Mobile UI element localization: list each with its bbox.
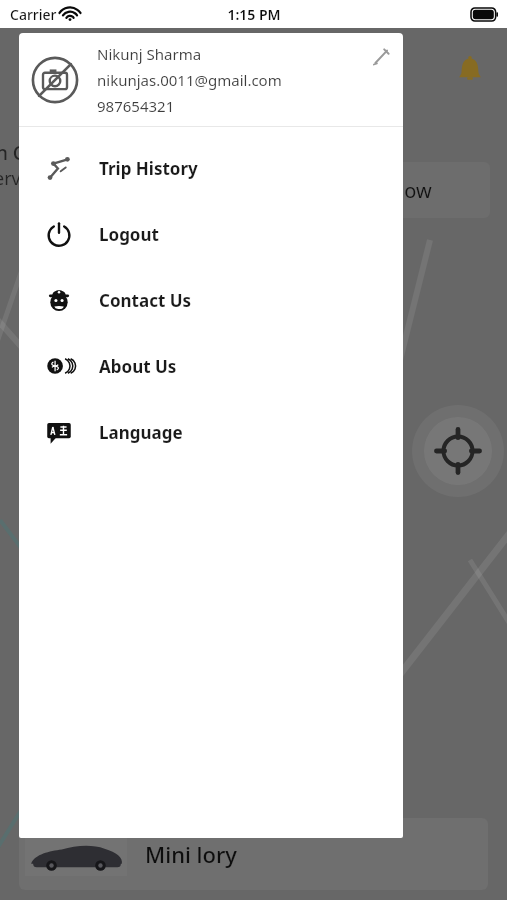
button[interactable]: About Us bbox=[19, 333, 403, 399]
staticText: nikunjas.0011@gmail.com bbox=[97, 70, 282, 90]
staticText: erv bbox=[0, 166, 21, 191]
button[interactable]: My location bbox=[424, 417, 492, 485]
button[interactable]: Mini lory bbox=[19, 818, 488, 890]
staticText: n C bbox=[0, 140, 25, 166]
staticText: 987654321 bbox=[97, 96, 175, 116]
button[interactable]: Logout bbox=[19, 201, 403, 267]
staticText: 1:15 PM bbox=[227, 5, 281, 24]
staticText: Nikunj Sharma bbox=[97, 44, 202, 64]
staticText: Language bbox=[99, 421, 183, 444]
button[interactable]: Edit profile bbox=[365, 41, 397, 73]
button[interactable]: Notifications bbox=[452, 52, 488, 88]
button[interactable]: Now bbox=[330, 162, 490, 218]
staticText: Contact Us bbox=[99, 289, 192, 312]
staticText: Logout bbox=[99, 223, 159, 246]
button[interactable]: Contact Us bbox=[19, 267, 403, 333]
staticText: About Us bbox=[99, 355, 177, 378]
button[interactable]: Language bbox=[19, 399, 403, 465]
staticText: Trip History bbox=[99, 157, 198, 180]
staticText: Carrier bbox=[10, 5, 57, 24]
staticText: Now bbox=[389, 177, 432, 204]
button[interactable]: Trip History bbox=[19, 135, 403, 201]
staticText: Mini lory bbox=[145, 839, 237, 869]
